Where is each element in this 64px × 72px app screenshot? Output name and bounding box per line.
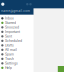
staticText: Inbox: [5, 16, 14, 20]
staticText: Settings: [5, 61, 18, 65]
staticText: All mail: [5, 48, 17, 52]
staticText: Drafts: [5, 43, 14, 47]
button[interactable]: Second account: [26, 3, 28, 5]
button[interactable]: Third account: [28, 3, 32, 5]
staticText: Trash: [5, 57, 14, 61]
button[interactable]: Help: [0, 66, 33, 70]
staticText: name@gmail.com: [1, 9, 30, 13]
button[interactable]: Spam: [0, 52, 33, 57]
staticText: Sent: [5, 34, 12, 38]
button[interactable]: Sent: [0, 34, 33, 39]
button[interactable]: Account: [1, 3, 4, 6]
staticText: Spam: [5, 52, 14, 56]
button[interactable]: Important: [0, 30, 33, 34]
button[interactable]: Trash: [0, 57, 33, 61]
staticText: Snoozed: [5, 25, 19, 29]
staticText: Help: [5, 66, 12, 70]
button[interactable]: Snoozed: [0, 25, 33, 30]
button[interactable]: Scheduled: [0, 39, 33, 43]
staticText: Starred: [5, 21, 16, 25]
button[interactable]: Starred: [0, 21, 33, 25]
button[interactable]: Settings: [0, 61, 33, 66]
staticText: Scheduled: [5, 39, 22, 43]
button[interactable]: Inbox: [0, 16, 33, 21]
staticText: Important: [5, 30, 20, 34]
button[interactable]: Drafts: [0, 43, 33, 48]
button[interactable]: All mail: [0, 48, 33, 52]
